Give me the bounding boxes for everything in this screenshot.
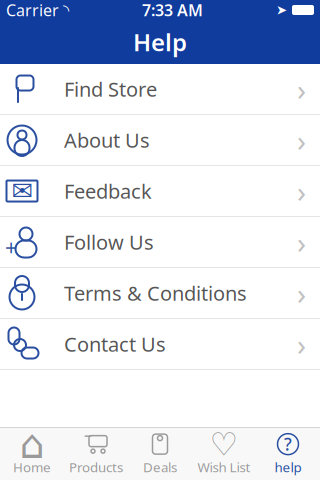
staticText: ? xyxy=(284,433,292,456)
staticText: Contact Us xyxy=(64,331,166,357)
button[interactable]: Deals xyxy=(128,430,192,478)
staticText: › xyxy=(297,222,306,261)
staticText: About Us xyxy=(64,127,150,153)
staticText: › xyxy=(297,120,306,159)
staticText: Carrier xyxy=(6,0,59,21)
staticText: › xyxy=(297,171,306,210)
staticText: Wish List xyxy=(197,458,250,476)
staticText: Feedback xyxy=(64,178,152,204)
staticText: ◝ xyxy=(63,1,69,19)
button[interactable]: ⌂ xyxy=(0,430,64,478)
button[interactable]: ♡ xyxy=(192,430,256,478)
button[interactable]: About Us xyxy=(0,115,320,166)
button[interactable]: Terms & Conditions xyxy=(0,268,320,319)
staticText: Find Store xyxy=(64,76,157,102)
staticText: › xyxy=(297,324,306,363)
button[interactable]: ? xyxy=(256,430,320,478)
staticText: 7:33 AM xyxy=(142,0,203,21)
staticText: ✉ xyxy=(11,177,32,205)
button[interactable]: Products xyxy=(64,430,128,478)
staticText: ⌂ xyxy=(19,421,44,467)
staticText: + xyxy=(5,233,17,261)
staticText: › xyxy=(297,69,306,108)
staticText: help xyxy=(274,458,301,476)
button[interactable]: Contact Us xyxy=(0,319,320,370)
button[interactable]: Find Store xyxy=(0,64,320,115)
staticText: Home xyxy=(13,458,51,476)
staticText: ➤ xyxy=(276,2,287,17)
staticText: Follow Us xyxy=(64,229,154,255)
staticText: › xyxy=(297,273,306,312)
staticText: Deals xyxy=(143,458,177,476)
staticText: Help xyxy=(133,26,187,58)
button[interactable]: ✉ xyxy=(0,166,320,217)
button[interactable]: + xyxy=(0,217,320,268)
staticText: Terms & Conditions xyxy=(64,280,247,306)
staticText: Products xyxy=(69,458,123,476)
staticText: ♡ xyxy=(209,426,238,462)
